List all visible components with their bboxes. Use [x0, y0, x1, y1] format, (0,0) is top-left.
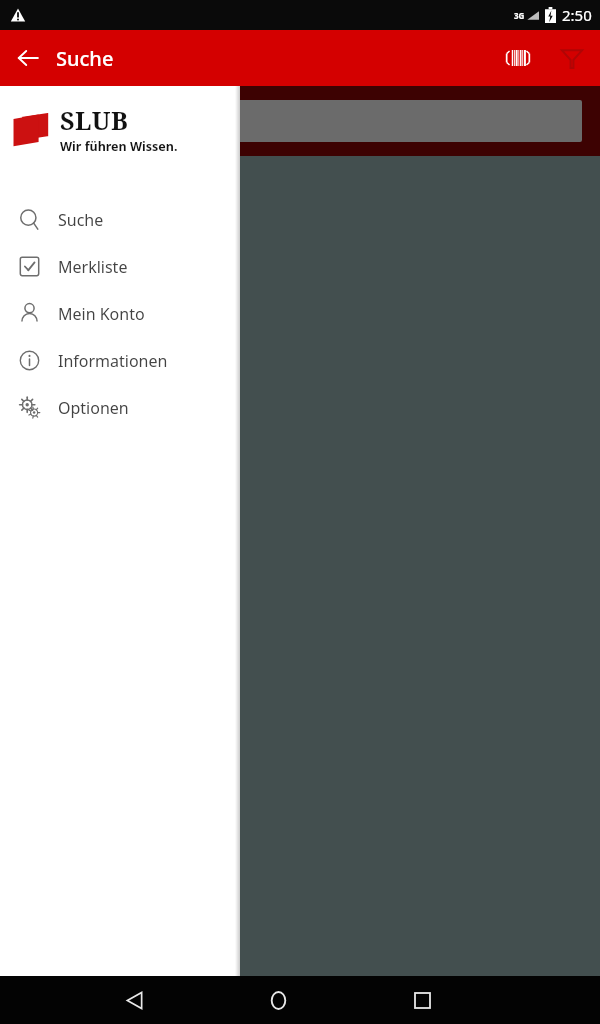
button[interactable]: Recent apps	[398, 976, 446, 1024]
button[interactable]: Search field	[16, 100, 582, 142]
staticText: SLUB	[60, 103, 129, 137]
button[interactable]: Merkliste	[0, 243, 240, 290]
button[interactable]: Suche	[0, 196, 240, 243]
button[interactable]: Optionen	[0, 384, 240, 431]
staticText: Mein Konto	[58, 303, 145, 325]
staticText: Informationen	[58, 350, 168, 372]
staticText: Merkliste	[58, 256, 128, 278]
button[interactable]: Scan barcode	[492, 32, 544, 84]
staticText: Optionen	[58, 397, 129, 419]
staticText: 2:50	[562, 5, 592, 25]
staticText: Suche	[56, 45, 114, 72]
button[interactable]: Informationen	[0, 337, 240, 384]
button[interactable]: Back	[110, 976, 158, 1024]
staticText: 3G	[514, 10, 525, 21]
button[interactable]: Mein Konto	[0, 290, 240, 337]
button[interactable]: Home	[254, 976, 302, 1024]
staticText: Wir führen Wissen.	[60, 138, 178, 155]
button[interactable]: Filter	[544, 30, 600, 86]
button[interactable]: Back	[0, 30, 56, 86]
staticText: Suche	[58, 209, 104, 231]
